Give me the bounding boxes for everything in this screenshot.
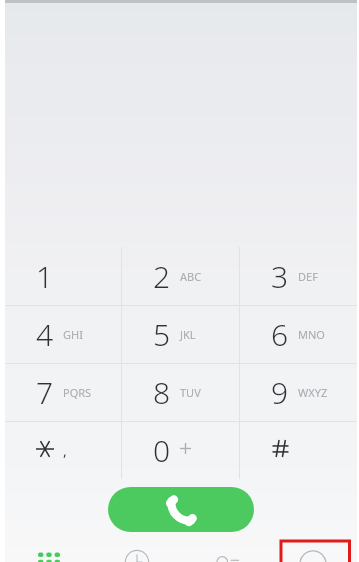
staticText: , — [63, 441, 67, 460]
button[interactable]: Dialpad — [5, 534, 93, 562]
staticText: PQRS — [63, 385, 92, 400]
button[interactable]: 2 — [122, 247, 239, 305]
staticText: 2 — [153, 256, 171, 297]
button[interactable]: 8 — [122, 364, 239, 421]
staticText: 1 — [36, 256, 54, 297]
staticText: 3 — [271, 256, 289, 297]
staticText: 0 — [153, 430, 171, 471]
staticText: WXYZ — [298, 385, 328, 400]
staticText: ABC — [180, 269, 202, 284]
button[interactable]: , — [5, 422, 121, 479]
staticText: GHI — [63, 327, 83, 342]
staticText: TUV — [180, 385, 201, 400]
button[interactable]: 9 — [240, 364, 357, 421]
button[interactable]: 4 — [5, 306, 121, 363]
button[interactable]: More — [269, 534, 357, 562]
staticText: 4 — [36, 314, 54, 355]
staticText: 8 — [153, 372, 171, 413]
staticText: 7 — [36, 372, 54, 413]
button[interactable]: 5 — [122, 306, 239, 363]
staticText: MNO — [298, 327, 325, 342]
button[interactable]: 3 — [240, 247, 357, 305]
staticText: 5 — [153, 314, 171, 355]
button[interactable]: 1 — [5, 247, 121, 305]
button[interactable] — [240, 422, 357, 479]
button[interactable]: 7 — [5, 364, 121, 421]
staticText: 6 — [271, 314, 289, 355]
button[interactable]: Recents — [93, 534, 181, 562]
button[interactable]: Call — [108, 487, 254, 532]
button[interactable]: 0 — [122, 422, 239, 479]
staticText: 9 — [271, 372, 289, 413]
button[interactable]: 6 — [240, 306, 357, 363]
staticText: JKL — [180, 327, 196, 342]
button[interactable]: Contacts — [181, 534, 269, 562]
staticText: DEF — [298, 269, 318, 284]
